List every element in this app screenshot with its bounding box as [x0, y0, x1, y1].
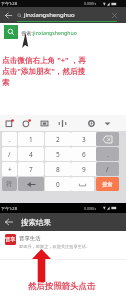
staticText: 1	[29, 135, 33, 144]
staticText: jinxiangshenghuo	[24, 11, 75, 19]
button[interactable]: .	[2, 132, 17, 146]
staticText: -	[8, 180, 11, 189]
staticText: 0.00K/s	[84, 1, 97, 6]
button[interactable]: 搜索:	[0, 23, 126, 41]
button[interactable]: Keyboard option	[20, 117, 32, 129]
button[interactable]: 6	[71, 147, 97, 161]
button[interactable]: /	[2, 147, 17, 161]
button[interactable]: 搜索	[96, 177, 119, 191]
button[interactable]: Keyboard option	[85, 117, 97, 129]
staticText: 7	[29, 165, 33, 174]
staticText: 0	[56, 180, 60, 189]
button[interactable]: 晋享	[0, 231, 126, 259]
button[interactable]: Return	[18, 177, 44, 191]
staticText: 爱提升，爱家之，欢迎关注晋享生活。	[19, 244, 91, 249]
staticText: 6	[82, 150, 86, 159]
button[interactable]: Backspace	[96, 132, 119, 146]
staticText: .	[107, 150, 109, 159]
staticText: 4	[29, 150, 33, 159]
button[interactable]: 符	[2, 177, 17, 191]
staticText: 晋享	[5, 236, 16, 243]
button[interactable]: 9	[71, 162, 97, 176]
button[interactable]: .	[96, 147, 119, 161]
button[interactable]: Back	[0, 7, 16, 23]
button[interactable]: 4	[18, 147, 44, 161]
staticText: +	[8, 165, 12, 174]
staticText: /	[106, 165, 109, 174]
staticText: jinxiangshenghuo	[33, 29, 77, 36]
staticText: 搜索:	[21, 29, 33, 36]
button[interactable]: Keyboard option	[101, 117, 113, 129]
button[interactable]: 2	[45, 132, 71, 146]
button[interactable]: Space	[71, 177, 94, 191]
staticText: /	[8, 150, 11, 159]
button[interactable]: Back	[0, 213, 18, 231]
button[interactable]: +	[2, 162, 17, 176]
button[interactable]: Clear query	[106, 7, 122, 23]
button[interactable]: Keyboard option	[38, 117, 50, 129]
button[interactable]: 0	[45, 177, 71, 191]
staticText: 8	[56, 165, 60, 174]
button[interactable]: 5	[45, 147, 71, 161]
button[interactable]: 8	[45, 162, 71, 176]
staticText: 然后按照箭头点击	[28, 281, 96, 292]
button[interactable]: 7	[18, 162, 44, 176]
button[interactable]: 3	[71, 132, 97, 146]
staticText: 晋享生活	[19, 235, 41, 242]
staticText: 2	[56, 135, 60, 144]
button[interactable]: -	[2, 177, 17, 191]
button[interactable]: Keyboard option	[3, 117, 15, 129]
staticText: 搜索	[102, 181, 113, 188]
staticText: 下午1:28	[1, 1, 17, 6]
staticText: 0.00K/s	[84, 206, 97, 211]
staticText: 搜索结果	[21, 218, 51, 227]
staticText: 下午1:28	[1, 206, 17, 211]
staticText: 3	[82, 135, 86, 144]
staticText: 9	[82, 165, 86, 174]
staticText: 5	[56, 150, 60, 159]
staticText: 符	[6, 180, 13, 188]
button[interactable]: 1	[18, 132, 44, 146]
staticText: 点击微信右上角 "+" ，再 点击"添加朋友"，然后搜 索	[2, 55, 86, 87]
button[interactable]: Keyboard option	[56, 117, 68, 129]
staticText: .	[9, 135, 11, 144]
button[interactable]: /	[96, 162, 119, 176]
